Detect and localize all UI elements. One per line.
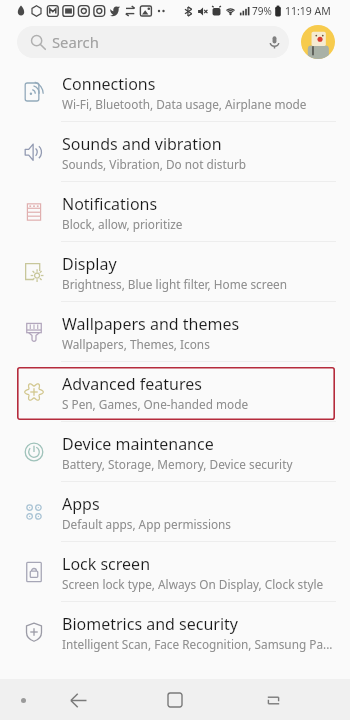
staticText: Notifications [62,193,158,215]
button[interactable]: Voice search [264,32,284,52]
staticText: Connections [62,73,156,95]
button[interactable]: Apps [0,482,350,542]
button[interactable]: Advanced features [0,362,350,422]
button[interactable]: Search [17,26,289,58]
staticText: Intelligent Scan, Face Recognition, Sams… [62,636,333,652]
staticText: Wi-Fi, Bluetooth, Data usage, Airplane m… [62,96,307,112]
button[interactable]: Wallpapers and themes [0,302,350,362]
staticText: Device maintenance [62,433,214,455]
staticText: Wallpapers, Themes, Icons [62,336,210,352]
staticText: Sounds, Vibration, Do not disturb [62,156,247,172]
button[interactable]: Recents [255,682,291,718]
staticText: 11:19 AM [285,4,331,18]
staticText: S Pen, Games, One-handed mode [62,396,249,412]
staticText: Advanced features [62,373,202,395]
staticText: Search [52,32,99,52]
button[interactable]: Lock screen [0,542,350,602]
button[interactable]: Notifications [0,182,350,242]
staticText: Block, allow, prioritize [62,216,183,232]
staticText: Brightness, Blue light filter, Home scre… [62,276,287,292]
button[interactable]: Display [0,242,350,302]
button[interactable]: Menu [9,686,37,714]
button[interactable]: Account [301,25,335,59]
staticText: Sounds and vibration [62,133,222,155]
button[interactable]: Home [157,682,193,718]
button[interactable]: Biometrics and security [0,602,350,662]
button[interactable]: Connections [0,62,350,122]
staticText: Wallpapers and themes [62,313,240,335]
button[interactable]: Device maintenance [0,422,350,482]
staticText: 79% [252,4,272,18]
staticText: Screen lock type, Always On Display, Clo… [62,576,324,592]
staticText: Apps [62,493,100,515]
staticText: Lock screen [62,553,151,575]
staticText: Default apps, App permissions [62,516,232,532]
button[interactable]: Sounds and vibration [0,122,350,182]
staticText: Biometrics and security [62,613,239,635]
button[interactable]: Back [60,682,96,718]
staticText: Battery, Storage, Memory, Device securit… [62,456,293,472]
staticText: Display [62,253,117,275]
